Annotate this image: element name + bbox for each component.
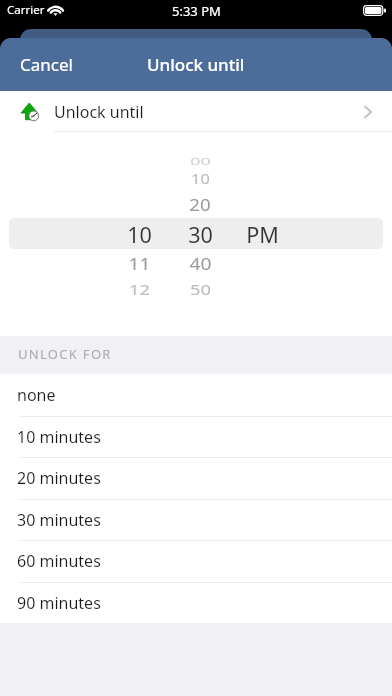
staticText: 10 minutes xyxy=(17,426,101,448)
staticText: Cancel xyxy=(20,53,73,76)
staticText: UNLOCK FOR xyxy=(18,345,112,363)
staticText: 12 xyxy=(129,278,150,299)
staticText: none xyxy=(17,384,56,406)
staticText: Unlock until xyxy=(54,101,144,123)
other: Open xyxy=(364,106,372,118)
staticText: Carrier xyxy=(7,2,45,18)
staticText: 40 xyxy=(189,252,212,274)
button[interactable]: Unlock until xyxy=(0,91,392,132)
staticText: 20 minutes xyxy=(17,467,101,489)
button[interactable]: 30 minutes xyxy=(0,499,392,541)
staticText: PM xyxy=(246,220,279,249)
staticText: 10 xyxy=(191,168,210,188)
staticText: 5:33 PM xyxy=(172,2,221,20)
button[interactable]: 10 minutes xyxy=(0,416,392,458)
staticText: 20 xyxy=(189,193,211,216)
button[interactable]: none xyxy=(0,374,392,416)
staticText: 30 minutes xyxy=(17,509,101,531)
staticText: 30 xyxy=(188,220,213,249)
button[interactable]: 20 minutes xyxy=(0,457,392,499)
staticText: 11 xyxy=(128,252,151,274)
button[interactable]: 60 minutes xyxy=(0,540,392,582)
staticText: 60 minutes xyxy=(17,550,101,572)
staticText: 00 xyxy=(190,154,211,168)
staticText: 90 minutes xyxy=(17,592,101,614)
staticText: 50 xyxy=(190,278,211,299)
button[interactable]: 90 minutes xyxy=(0,582,392,624)
staticText: Unlock until xyxy=(147,53,245,76)
staticText: 10 xyxy=(127,220,152,249)
button[interactable]: Cancel xyxy=(0,43,89,86)
